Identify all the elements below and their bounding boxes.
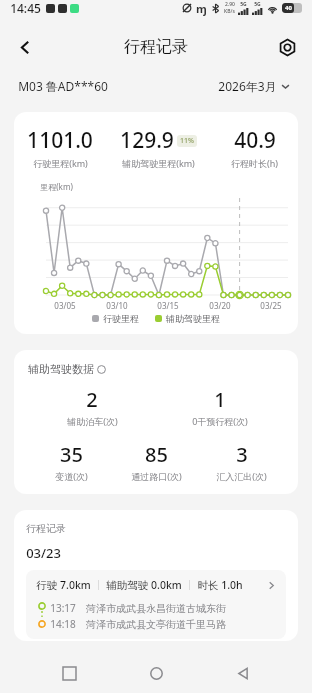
staticText: 1101.0	[27, 126, 93, 155]
button[interactable]: Back	[225, 655, 261, 691]
other: Info	[97, 365, 106, 374]
staticText: 2.90	[225, 1, 235, 8]
staticText: 13:17	[50, 601, 76, 615]
staticText: 通过路口(次)	[131, 470, 182, 482]
button[interactable]: Back	[8, 30, 42, 64]
staticText: 40	[285, 4, 292, 12]
staticText: 行驶里程	[103, 313, 139, 324]
staticText: ɱ	[196, 1, 207, 16]
staticText: M03 鲁AD***60	[18, 78, 108, 94]
staticText: 5G	[254, 1, 261, 8]
staticText: 03/15	[157, 300, 179, 311]
staticText: 辅助驾驶 0.0km	[106, 578, 182, 592]
staticText: 行驶里程(km)	[33, 157, 88, 169]
staticText: 03/05	[54, 300, 76, 311]
staticText: 2	[86, 386, 98, 413]
staticText: 行驶 7.0km	[36, 578, 91, 592]
staticText: 3	[236, 441, 248, 468]
staticText: 129.9	[120, 126, 174, 155]
staticText: 5G	[240, 1, 247, 8]
staticText: 11%	[180, 136, 194, 146]
button[interactable]: Settings	[270, 30, 304, 64]
button[interactable]: Home	[138, 655, 174, 691]
staticText: 行程记录	[26, 522, 66, 535]
staticText: 菏泽市成武县文亭街道千里马路	[86, 618, 226, 631]
staticText: 40.9	[234, 126, 276, 155]
staticText: 2026年3月	[218, 78, 277, 94]
staticText: 35	[60, 441, 83, 468]
staticText: 汇入汇出(次)	[216, 470, 267, 482]
staticText: 辅助驾驶里程(km)	[122, 157, 195, 169]
staticText: 辅助驾驶数据	[28, 362, 94, 376]
staticText: 03/20	[209, 300, 231, 311]
staticText: 行程时长(h)	[231, 157, 278, 169]
button[interactable]: Recent apps	[51, 655, 87, 691]
staticText: 85	[145, 441, 168, 468]
staticText: 行程记录	[124, 37, 188, 57]
button[interactable]: 行驶 7.0km	[26, 570, 286, 639]
staticText: 14:18	[50, 617, 76, 631]
staticText: 0干预行程(次)	[192, 415, 248, 427]
staticText: 03/23	[26, 544, 61, 562]
staticText: 时长 1.0h	[197, 578, 243, 592]
staticText: 03/25	[260, 300, 282, 311]
staticText: 里程(km)	[40, 181, 73, 192]
staticText: 14:45	[10, 0, 41, 16]
staticText: 辅助驾驶里程	[166, 313, 220, 324]
staticText: 辅助泊车(次)	[67, 415, 118, 427]
staticText: 03/10	[106, 300, 128, 311]
button[interactable]: 2026年3月	[214, 74, 294, 98]
staticText: 变道(次)	[55, 470, 88, 482]
staticText: KB/s	[224, 8, 235, 15]
staticText: 1	[214, 386, 226, 413]
staticText: 菏泽市成武县永昌街道古城东街	[86, 602, 226, 615]
